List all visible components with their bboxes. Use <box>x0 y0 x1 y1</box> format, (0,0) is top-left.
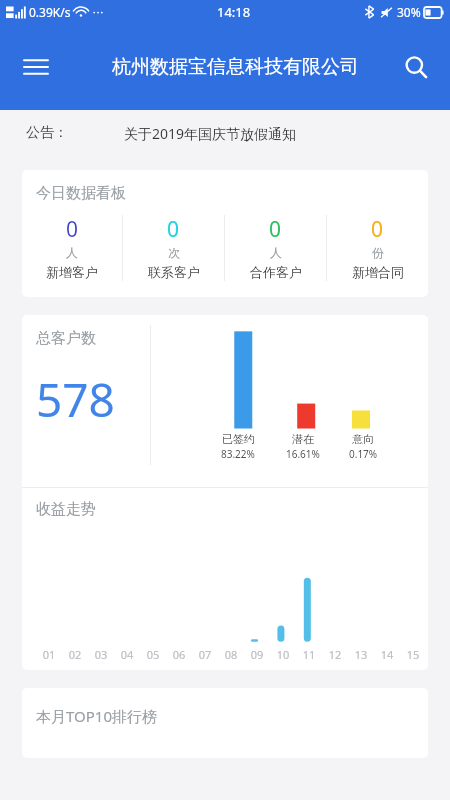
staticText: 0.17% <box>349 447 378 461</box>
staticText: 09 <box>244 647 270 662</box>
staticText: 总客户数 <box>36 329 96 348</box>
staticText: 0 <box>269 215 282 244</box>
button[interactable]: 今日数据看板 <box>22 170 428 297</box>
button[interactable]: 0 <box>22 215 122 280</box>
staticText: 83.22% <box>221 447 255 461</box>
staticText: 12 <box>322 647 348 662</box>
button[interactable]: 杭州数据宝信息科技有限公司 <box>112 55 359 79</box>
staticText: 04 <box>114 647 140 662</box>
staticText: 11 <box>296 647 322 662</box>
staticText: 05 <box>140 647 166 662</box>
staticText: 新增客户 <box>46 264 98 280</box>
staticText: 14 <box>374 647 400 662</box>
staticText: 合作客户 <box>250 264 302 280</box>
button[interactable]: Menu <box>14 45 58 89</box>
staticText: 份 <box>372 245 384 260</box>
staticText: 0.39K/s <box>29 4 71 20</box>
staticText: 07 <box>192 647 218 662</box>
staticText: 16.61% <box>286 447 320 461</box>
button[interactable]: 收益走势 <box>22 488 428 670</box>
staticText: 13 <box>348 647 374 662</box>
staticText: 15 <box>400 647 426 662</box>
button[interactable]: 0 <box>225 215 326 280</box>
staticText: 联系客户 <box>148 264 200 280</box>
staticText: 次 <box>168 245 180 260</box>
staticText: 收益走势 <box>36 500 96 519</box>
button[interactable]: 0 <box>327 215 428 280</box>
staticText: 10 <box>270 647 296 662</box>
button[interactable]: 总客户数 <box>22 315 428 487</box>
staticText: 意向 <box>352 432 374 446</box>
staticText: 08 <box>218 647 244 662</box>
staticText: 新增合同 <box>352 264 404 280</box>
staticText: 0 <box>167 215 180 244</box>
staticText: 06 <box>166 647 192 662</box>
button[interactable]: 公告： <box>0 110 450 156</box>
button[interactable]: 0 <box>123 215 224 280</box>
staticText: 已签约 <box>222 432 255 446</box>
staticText: 杭州数据宝信息科技有限公司 <box>112 55 359 79</box>
button[interactable]: Search <box>394 45 438 89</box>
staticText: 0 <box>66 215 79 244</box>
staticText: 30% <box>397 4 421 20</box>
staticText: 今日数据看板 <box>36 184 126 203</box>
staticText: 人 <box>270 245 282 260</box>
staticText: 公告： <box>26 124 68 142</box>
staticText: 02 <box>62 647 88 662</box>
staticText: 潜在 <box>292 432 314 446</box>
staticText: 关于2019年国庆节放假通知 <box>124 124 297 143</box>
staticText: 人 <box>66 245 78 260</box>
staticText: 14:18 <box>217 3 251 21</box>
staticText: 03 <box>88 647 114 662</box>
staticText: 01 <box>36 647 62 662</box>
button[interactable]: 本月TOP10排行榜 <box>22 688 428 758</box>
staticText: 本月TOP10排行榜 <box>36 706 157 726</box>
staticText: 0 <box>371 215 384 244</box>
staticText: 578 <box>36 368 115 431</box>
